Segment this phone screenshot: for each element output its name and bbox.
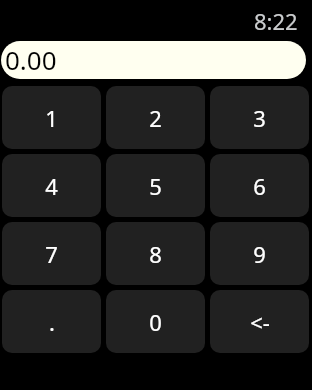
staticText: 5 <box>149 171 162 201</box>
staticText: 8:22 <box>254 6 298 36</box>
staticText: . <box>49 307 55 337</box>
staticText: 7 <box>45 239 58 269</box>
button[interactable]: 3 <box>210 86 309 149</box>
staticText: 0 <box>149 307 162 337</box>
button[interactable]: Backspace <box>210 290 309 353</box>
staticText: 2 <box>149 103 162 133</box>
staticText: <- <box>250 307 270 337</box>
button[interactable]: 5 <box>106 154 205 217</box>
button[interactable]: 0 <box>106 290 205 353</box>
button[interactable]: 0.00 <box>1 41 306 79</box>
staticText: 3 <box>253 103 266 133</box>
button[interactable]: 4 <box>2 154 101 217</box>
button[interactable]: 1 <box>2 86 101 149</box>
staticText: 4 <box>45 171 58 201</box>
button[interactable]: 2 <box>106 86 205 149</box>
staticText: 0.00 <box>5 42 57 77</box>
staticText: 6 <box>253 171 266 201</box>
button[interactable]: 7 <box>2 222 101 285</box>
staticText: 8 <box>149 239 162 269</box>
staticText: 9 <box>253 239 266 269</box>
button[interactable]: Decimal point <box>2 290 101 353</box>
button[interactable]: 6 <box>210 154 309 217</box>
button[interactable]: 8 <box>106 222 205 285</box>
button[interactable]: 9 <box>210 222 309 285</box>
staticText: 1 <box>45 103 58 133</box>
